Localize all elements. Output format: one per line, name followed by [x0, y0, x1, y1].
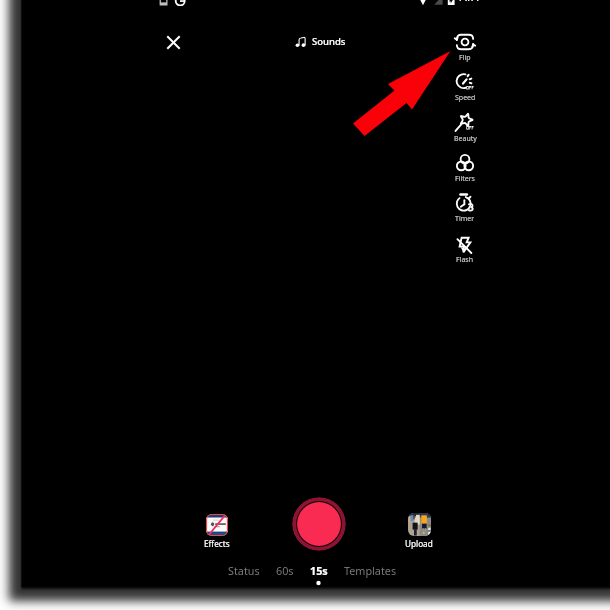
button[interactable]: Templates	[336, 560, 405, 581]
button[interactable]: Speed	[443, 71, 487, 107]
staticText: 60s	[276, 563, 294, 578]
staticText: Upload	[405, 538, 433, 549]
button[interactable]: Upload	[396, 513, 442, 549]
button[interactable]: Status	[220, 560, 268, 581]
button[interactable]: Record	[292, 497, 346, 551]
staticText: Status	[228, 563, 260, 578]
button[interactable]: Effects	[194, 514, 240, 549]
staticText: Sounds	[312, 35, 346, 48]
staticText: Speed	[455, 93, 476, 103]
button[interactable]: Close	[158, 27, 189, 58]
button[interactable]: Filters	[443, 152, 487, 188]
staticText: 15s	[310, 563, 328, 578]
button[interactable]: Sounds	[295, 35, 346, 48]
button[interactable]: Beauty	[443, 112, 487, 148]
staticText: Timer	[455, 214, 475, 224]
staticText: Flash	[456, 255, 474, 265]
staticText: 5:02	[459, 0, 479, 1]
staticText: Templates	[344, 563, 397, 578]
button[interactable]: Flash	[443, 233, 487, 269]
button[interactable]: Flip	[443, 31, 487, 67]
staticText: Beauty	[454, 134, 477, 144]
staticText: Flip	[459, 53, 471, 63]
button[interactable]: 60s	[268, 560, 302, 581]
staticText: Effects	[204, 538, 230, 549]
staticText: Filters	[455, 174, 475, 184]
button[interactable]: Timer	[443, 192, 487, 228]
button[interactable]: 15s	[302, 560, 336, 581]
